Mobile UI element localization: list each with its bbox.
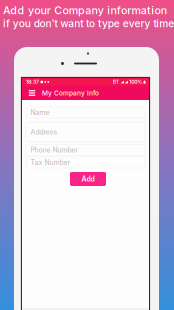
- staticText: 18:37: [26, 79, 39, 85]
- button[interactable]: Address: [26, 122, 145, 142]
- staticText: Phone Number: [30, 146, 78, 154]
- staticText: Add: [81, 175, 94, 183]
- staticText: Tax Number: [30, 158, 70, 167]
- button[interactable]: Menu: [26, 86, 38, 100]
- button[interactable]: Name: [26, 107, 145, 118]
- staticText: 100%: [129, 79, 142, 85]
- staticText: if you don't want to type every time: [3, 17, 174, 30]
- staticText: Address: [30, 128, 57, 136]
- staticText: BT: [113, 79, 119, 85]
- button[interactable]: Add: [70, 172, 106, 186]
- staticText: Add your Company information: [3, 4, 167, 17]
- staticText: Name: [30, 108, 49, 117]
- staticText: My Company Info: [42, 89, 99, 97]
- button[interactable]: Phone Number: [26, 144, 145, 155]
- button[interactable]: Tax Number: [26, 157, 145, 168]
